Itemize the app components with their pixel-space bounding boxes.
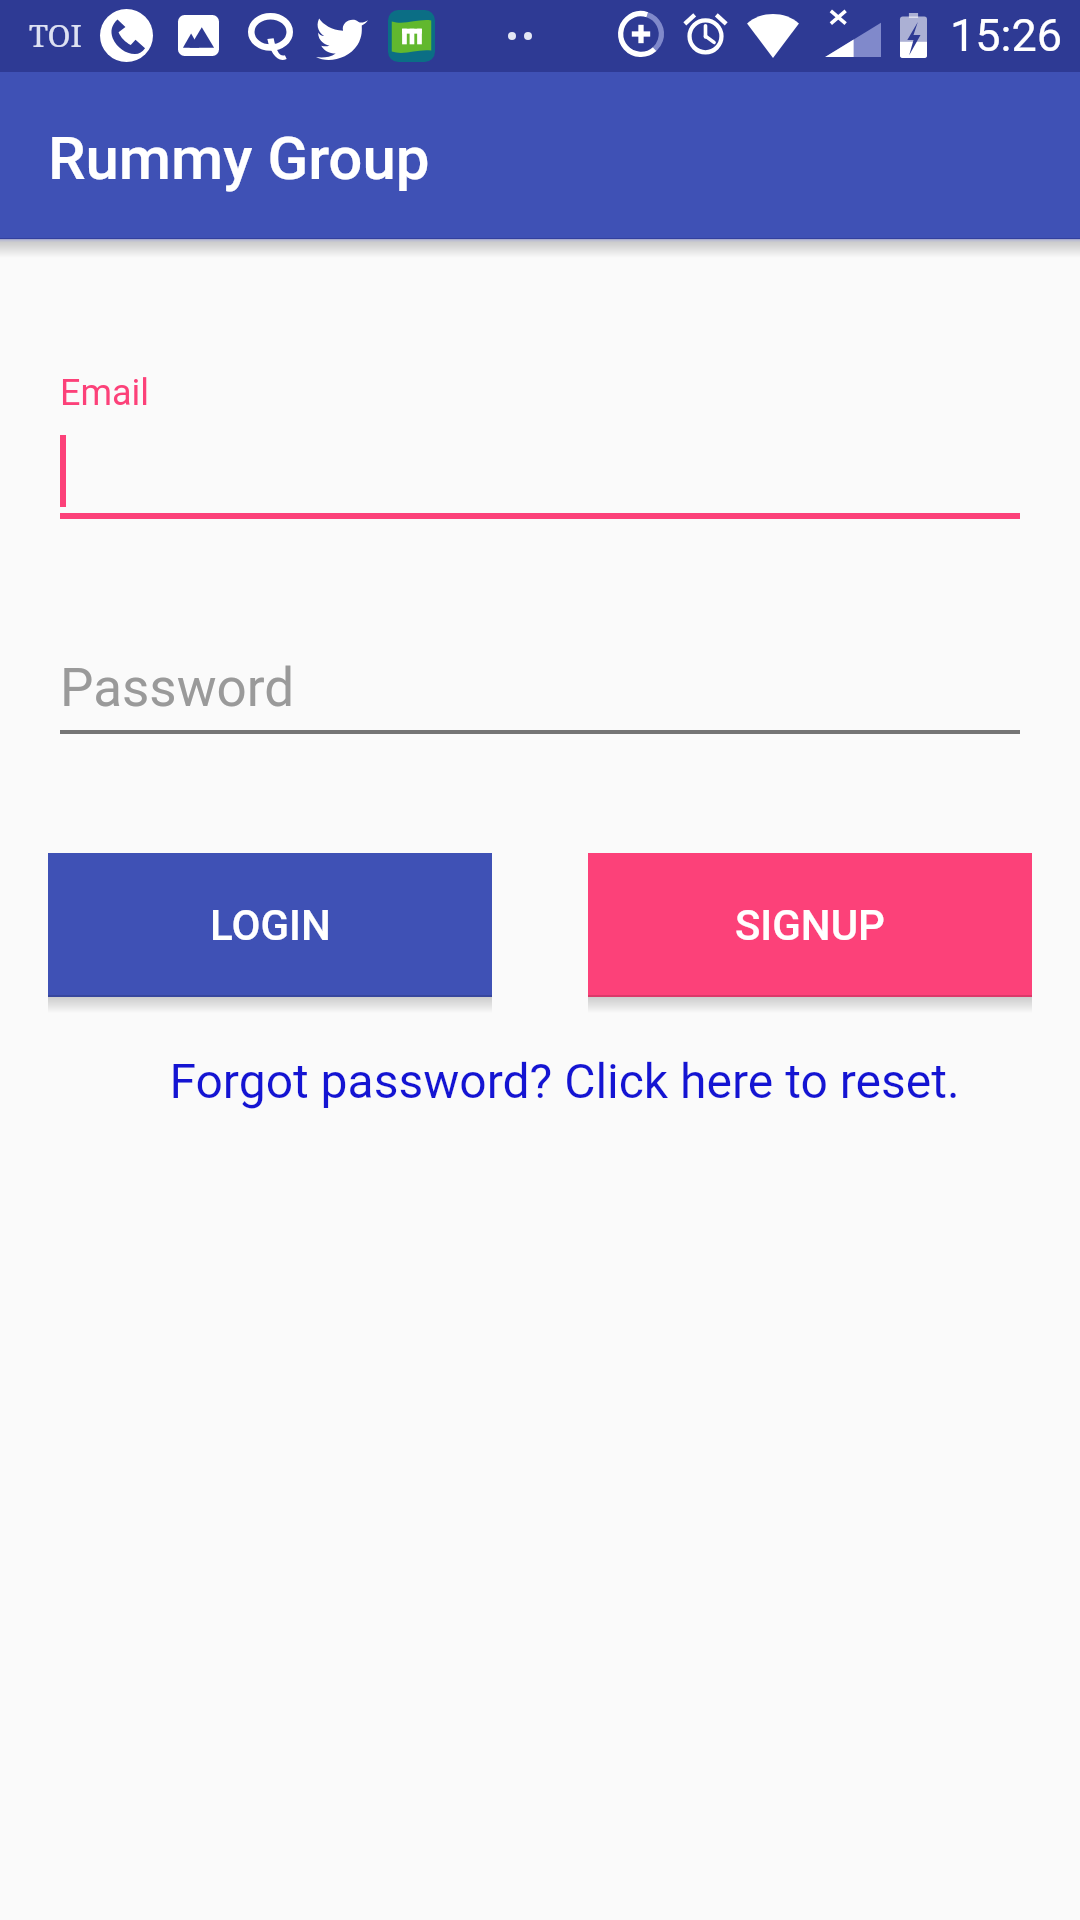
staticText: LOGIN (210, 901, 331, 950)
staticText: Rummy Group (48, 123, 430, 193)
staticText: Email (60, 372, 150, 414)
button[interactable]: Forgot password? Click here to reset. (48, 1038, 1080, 1124)
staticText: TOI (29, 14, 82, 56)
staticText: Forgot password? Click here to reset. (169, 1053, 960, 1109)
staticText: SIGNUP (735, 901, 885, 950)
button[interactable]: LOGIN (48, 853, 492, 997)
button[interactable]: Password (60, 650, 1020, 734)
button[interactable]: Email (60, 360, 1020, 520)
button[interactable]: SIGNUP (588, 853, 1032, 997)
staticText: 15:26 (950, 9, 1063, 62)
staticText: Password (60, 657, 295, 719)
